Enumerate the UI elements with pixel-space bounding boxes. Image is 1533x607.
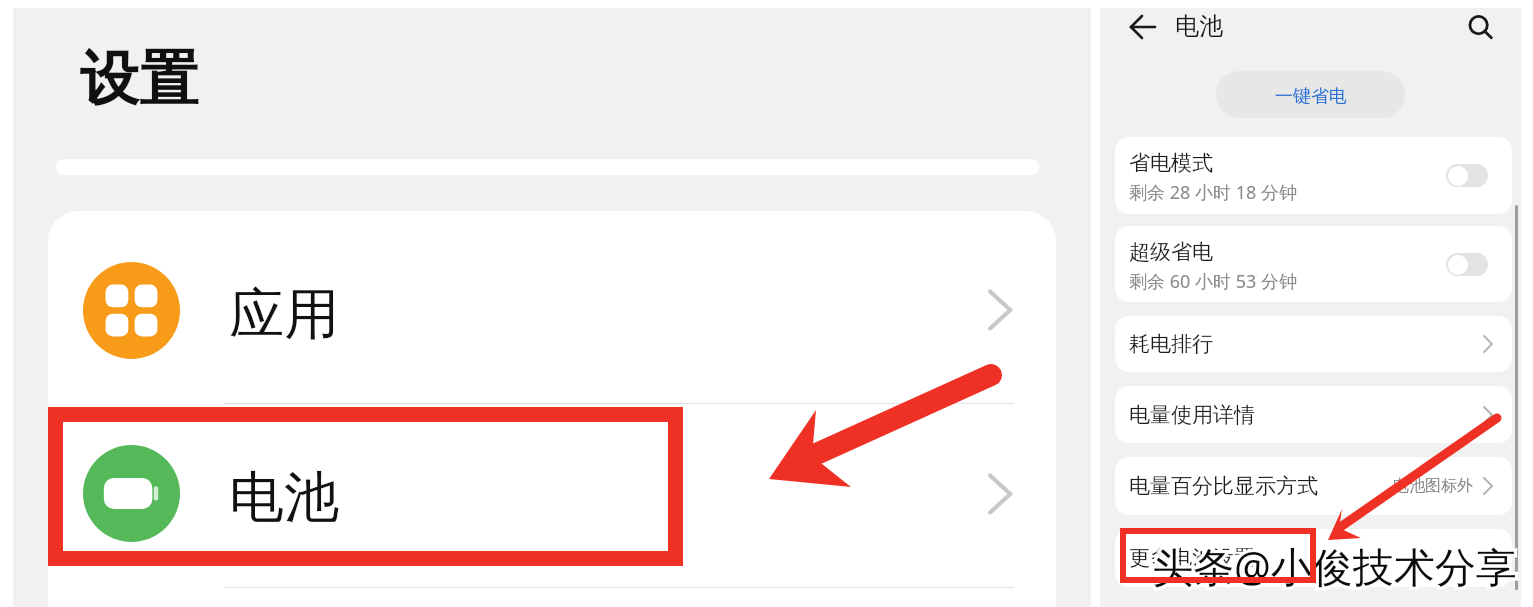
staticText: 剩余 28 小时 18 分钟 — [1129, 180, 1297, 205]
staticText: 电池图标外 — [1393, 476, 1473, 496]
staticText: 省电模式 — [1129, 150, 1213, 176]
button[interactable]: 更多电池设置 — [1115, 529, 1512, 587]
button[interactable]: 应用 — [48, 211, 1056, 403]
staticText: 电池 — [229, 463, 339, 532]
staticText: 剩余 60 小时 53 分钟 — [1129, 269, 1297, 294]
button[interactable]: Toggle 超级省电 — [1446, 253, 1488, 276]
staticText: 耗电排行 — [1129, 331, 1213, 357]
staticText: 头条@小俊技术分享 — [1152, 538, 1517, 594]
button[interactable]: 电量使用详情 — [1115, 386, 1512, 443]
staticText: 电量百分比显示方式 — [1129, 473, 1318, 499]
staticText: 超级省电 — [1129, 239, 1213, 265]
staticText: 头条@小俊技术分享 — [1152, 538, 1517, 594]
staticText: 电量使用详情 — [1129, 402, 1255, 428]
button[interactable]: Toggle 省电模式 — [1446, 164, 1488, 187]
button[interactable]: 耗电排行 — [1115, 316, 1512, 372]
button[interactable]: Search — [1458, 10, 1502, 54]
staticText: 更多电池设置 — [1129, 545, 1255, 571]
button[interactable]: 省电模式 — [1115, 137, 1512, 214]
button[interactable]: 电量百分比显示方式 — [1115, 457, 1512, 515]
button[interactable]: 超级省电 — [1115, 226, 1512, 302]
button[interactable]: 电池 — [48, 404, 1056, 587]
button[interactable]: 一键省电 — [1216, 71, 1405, 118]
staticText: 应用 — [229, 280, 339, 349]
button[interactable]: Back — [1121, 10, 1165, 54]
staticText: 一键省电 — [1275, 85, 1347, 108]
staticText: 电池 — [1175, 11, 1223, 41]
staticText: 设置 — [80, 42, 198, 116]
